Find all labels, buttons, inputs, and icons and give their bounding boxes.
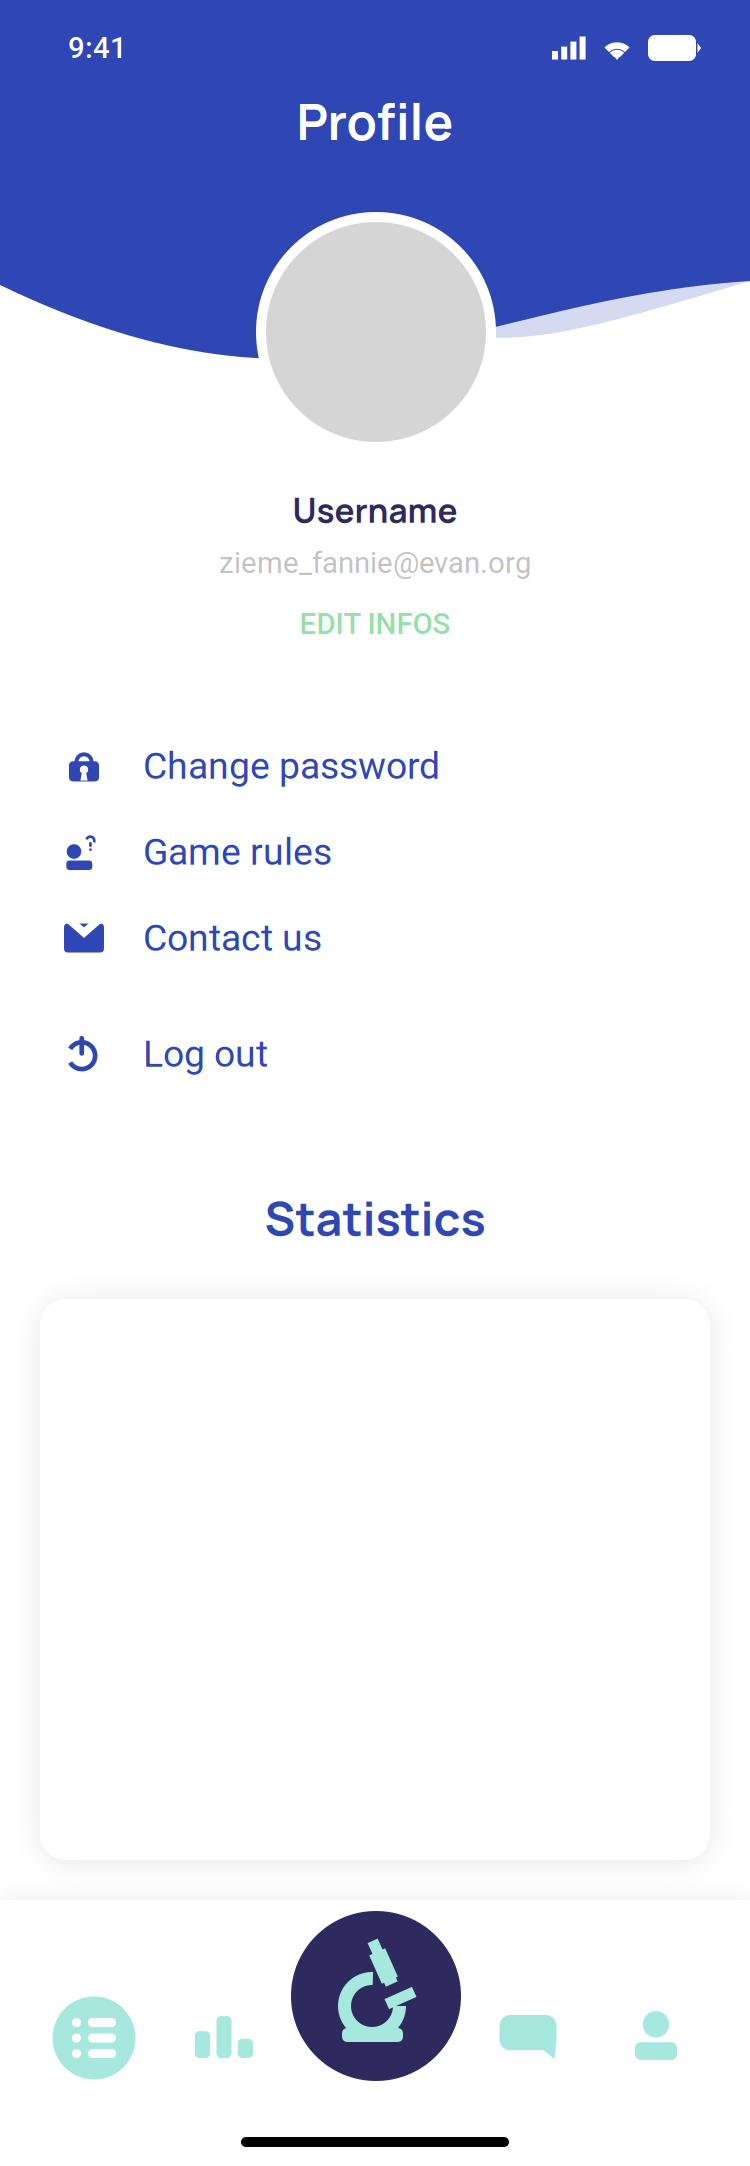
button[interactable]: Log out <box>0 1011 750 1097</box>
button[interactable]: Game rules <box>0 809 750 895</box>
button[interactable]: Messages <box>453 1972 603 2102</box>
button[interactable]: Contact us <box>0 895 750 981</box>
staticText: EDIT INFOS <box>299 607 450 641</box>
staticText: Change password <box>143 744 440 788</box>
button[interactable]: Statistics <box>149 1972 299 2102</box>
staticText: Contact us <box>143 916 322 960</box>
staticText: Statistics <box>264 1186 485 1250</box>
staticText: Username <box>292 487 457 533</box>
button[interactable]: Scan <box>291 1911 461 2081</box>
button[interactable]: Change password <box>0 723 750 809</box>
button[interactable]: Profile <box>581 1972 731 2102</box>
staticText: Profile <box>296 87 453 155</box>
staticText: zieme_fannie@evan.org <box>219 546 531 580</box>
staticText: Game rules <box>143 830 332 874</box>
button[interactable]: Menu <box>19 1973 169 2103</box>
staticText: Log out <box>143 1032 268 1076</box>
button[interactable]: EDIT INFOS <box>245 600 505 648</box>
staticText: 9:41 <box>68 31 127 65</box>
